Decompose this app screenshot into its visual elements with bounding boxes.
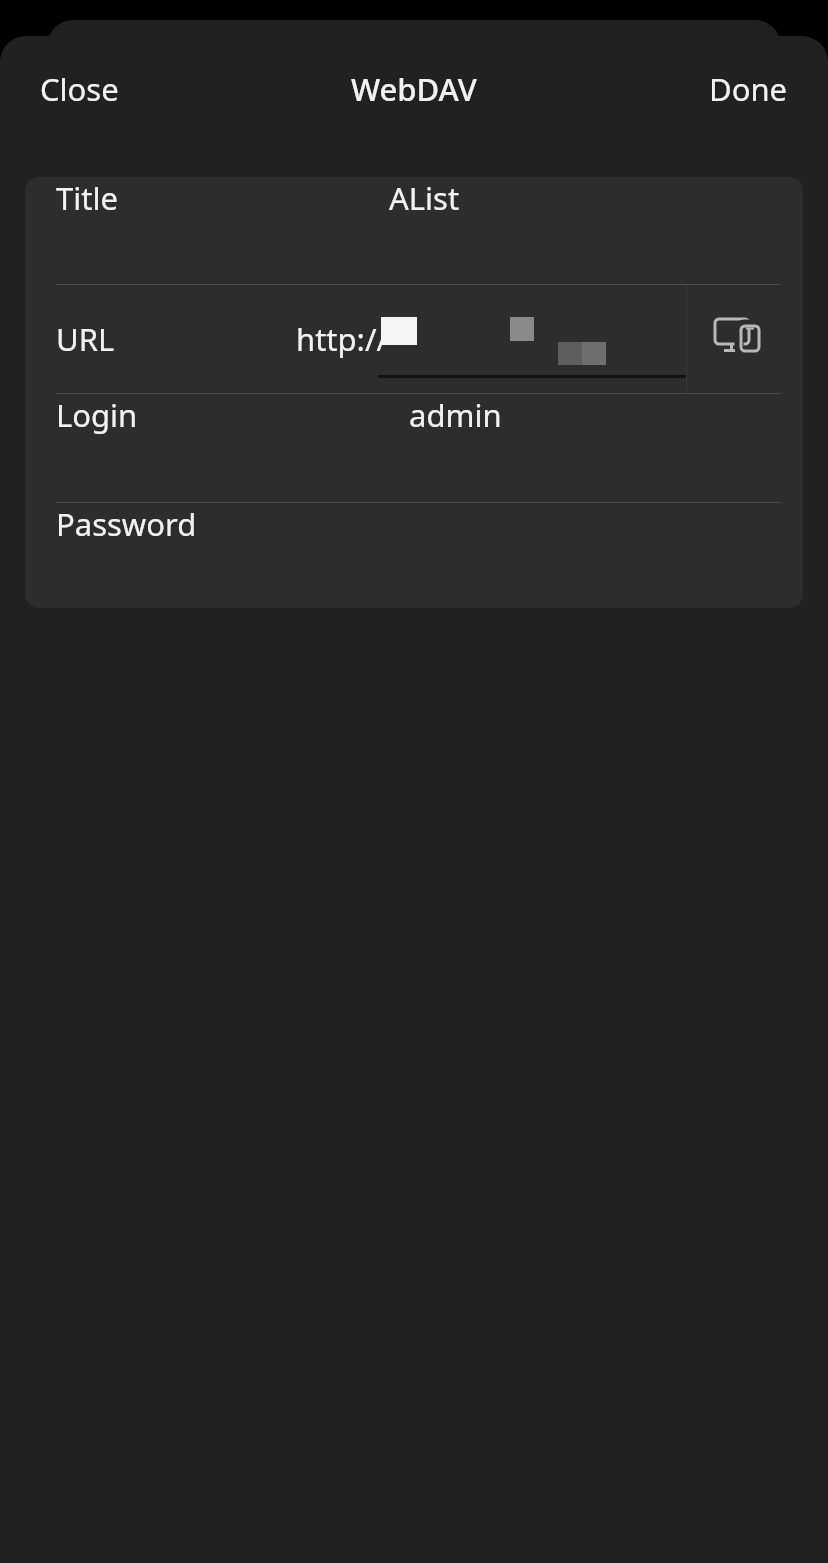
button[interactable]: Done	[689, 58, 808, 120]
button[interactable]: Title	[25, 177, 803, 284]
staticText: URL	[56, 318, 115, 360]
staticText: Password	[56, 503, 197, 545]
staticText: http://	[296, 318, 388, 360]
staticText: AList	[389, 177, 460, 219]
staticText: admin	[409, 394, 502, 436]
button[interactable]	[25, 285, 803, 393]
staticText: Login	[56, 394, 138, 436]
button[interactable]: Pick device	[701, 299, 781, 379]
button[interactable]: Close	[20, 58, 139, 120]
staticText: Title	[56, 177, 118, 219]
button[interactable]: Login	[25, 394, 803, 502]
staticText: Done	[709, 68, 788, 110]
button[interactable]: Password	[25, 503, 803, 608]
staticText: WebDAV	[351, 68, 477, 110]
staticText: Close	[40, 68, 119, 110]
